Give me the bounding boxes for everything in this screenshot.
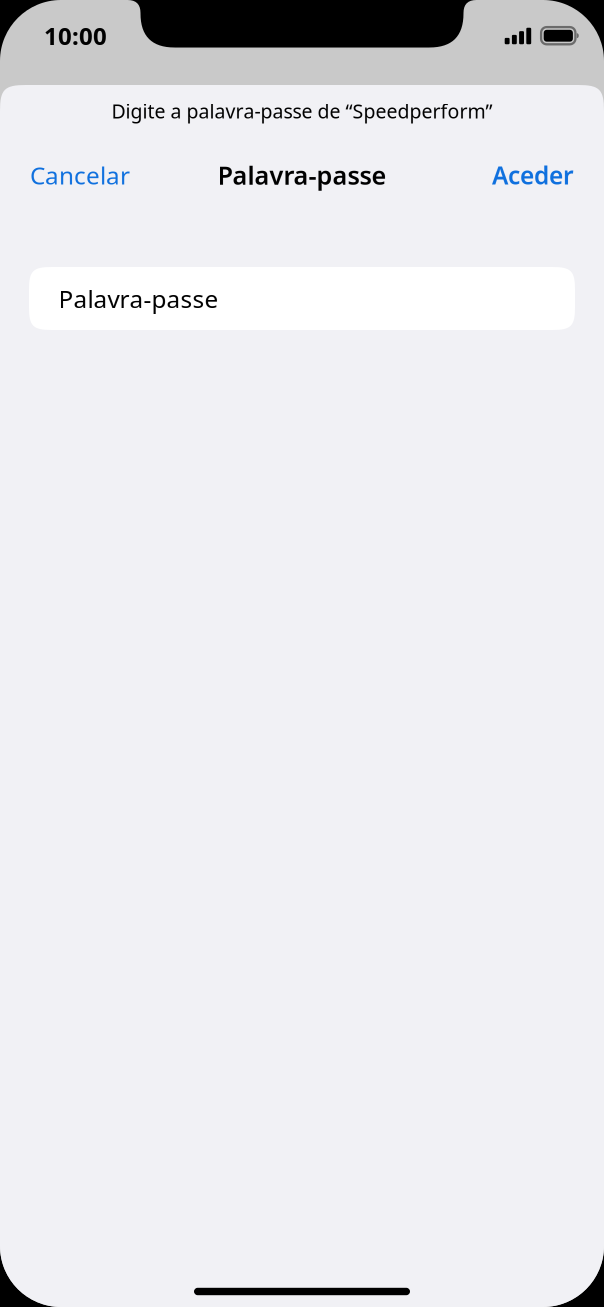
button[interactable]: Cancelar xyxy=(18,146,142,204)
staticText: Palavra-passe xyxy=(58,282,218,315)
staticText: Palavra-passe xyxy=(217,158,386,192)
button[interactable]: Palavra-passe xyxy=(29,267,575,330)
staticText: Aceder xyxy=(492,158,574,192)
staticText: Digite a palavra-passe de “Speedperform” xyxy=(111,98,492,124)
staticText: 10:00 xyxy=(44,19,107,52)
button[interactable]: Aceder xyxy=(480,146,586,204)
staticText: Cancelar xyxy=(30,158,130,192)
